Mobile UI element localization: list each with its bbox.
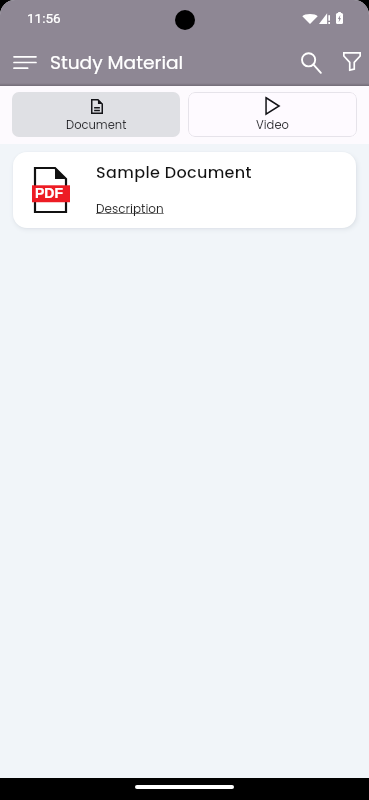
- button[interactable]: Search: [288, 43, 334, 83]
- button[interactable]: Video: [188, 92, 357, 137]
- staticText: Description: [96, 200, 164, 217]
- staticText: Sample Document: [96, 161, 252, 183]
- button[interactable]: Document: [12, 92, 180, 137]
- staticText: 11:56: [27, 10, 61, 26]
- button[interactable]: PDF: [13, 152, 356, 228]
- staticText: Study Material: [50, 49, 184, 75]
- button[interactable]: Filter: [334, 43, 369, 79]
- staticText: PDF: [35, 185, 63, 201]
- staticText: Document: [66, 117, 127, 133]
- staticText: Video: [256, 117, 289, 133]
- button[interactable]: Menu: [6, 43, 44, 81]
